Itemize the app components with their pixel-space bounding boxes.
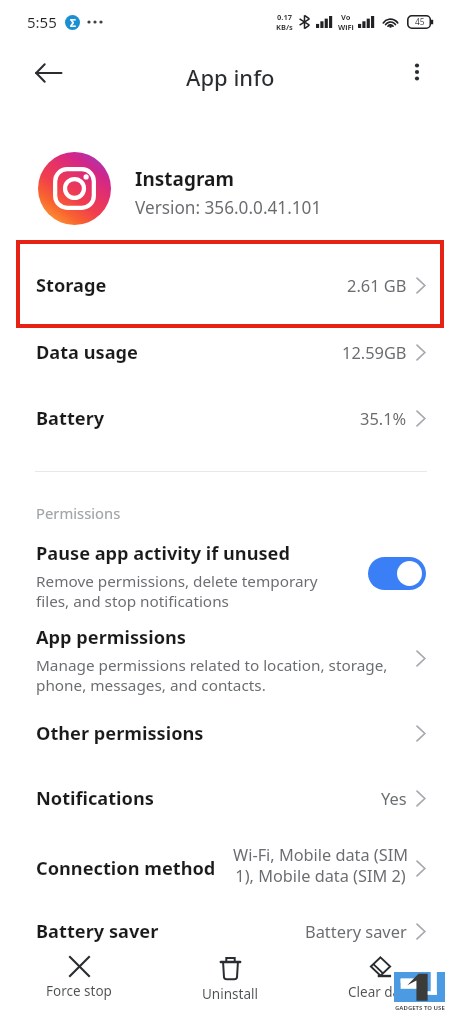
staticText: Σ [70, 16, 76, 30]
button[interactable]: Other permissions [0, 700, 461, 766]
staticText: Pause app activity if unused [36, 541, 290, 566]
button[interactable]: Notifications [0, 765, 461, 831]
button[interactable]: Pause app activity if unused [0, 530, 461, 612]
staticText: App permissions [36, 625, 186, 650]
staticText: Other permissions [36, 721, 204, 746]
staticText: Battery saver [36, 919, 159, 944]
staticText: App info [186, 62, 275, 92]
staticText: Force stop [46, 982, 112, 1000]
staticText: Connection method [36, 856, 216, 881]
staticText: 12.59GB [342, 341, 407, 363]
staticText: Notifications [36, 786, 154, 811]
staticText: 45 [415, 16, 425, 28]
button[interactable]: Back [26, 51, 70, 95]
staticText: Battery [36, 406, 105, 431]
staticText: Permissions [36, 503, 121, 523]
staticText: Vo [341, 12, 351, 22]
button[interactable]: Battery [0, 385, 461, 451]
staticText: 0.17 [277, 12, 292, 22]
staticText: Clear data [348, 983, 413, 1001]
button[interactable]: Battery saver [0, 898, 461, 964]
staticText: Version: 356.0.0.41.101 [135, 196, 322, 219]
staticText: 35.1% [360, 407, 407, 429]
button[interactable]: Storage [0, 252, 461, 318]
button[interactable]: Uninstall [166, 952, 294, 1024]
button[interactable]: Clear data [316, 952, 444, 1024]
staticText: Uninstall [202, 985, 258, 1003]
button[interactable]: More options [395, 50, 439, 94]
button[interactable]: Connection method [0, 834, 461, 902]
staticText: 5:55 [27, 12, 57, 32]
staticText: WiFi [338, 22, 354, 32]
staticText: Instagram [135, 166, 234, 192]
staticText: Manage permissions related to location, … [36, 655, 388, 696]
button[interactable]: App permissions [0, 614, 461, 694]
staticText: Wi-Fi, Mobile data (SIM 1), Mobile data … [233, 844, 408, 886]
staticText: GADGETS TO USE [395, 1004, 445, 1012]
staticText: 2.61 GB [347, 274, 407, 296]
button[interactable]: Force stop [15, 952, 143, 1024]
staticText: Remove permissions, delete temporary fil… [36, 571, 318, 612]
staticText: Battery saver [305, 920, 407, 942]
staticText: KB/s [276, 22, 293, 32]
staticText: Data usage [36, 340, 138, 365]
staticText: Storage [36, 273, 107, 298]
button[interactable]: Data usage [0, 319, 461, 385]
staticText: Yes [381, 787, 407, 809]
